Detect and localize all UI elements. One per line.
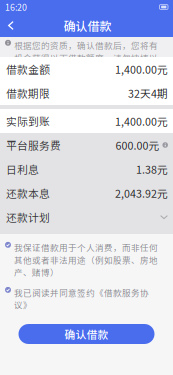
staticText: 平台服务费 bbox=[6, 137, 61, 153]
button[interactable]: 我保证借款用于个人消费，而非任何其他或者非法用途（例如股票、房地产、赌博） bbox=[0, 241, 173, 278]
staticText: 确认借款 bbox=[63, 17, 111, 34]
staticText: 1,400.00元 bbox=[115, 113, 168, 129]
button[interactable]: 确认借款 bbox=[18, 324, 154, 344]
staticText: 1.38元 bbox=[136, 161, 168, 177]
staticText: 实际到账 bbox=[6, 113, 50, 129]
staticText: 借款金额 bbox=[6, 61, 50, 77]
staticText: 1,400.00元 bbox=[115, 61, 168, 77]
staticText: 我保证借款用于个人消费，而非任何其他或者非法用途（例如股票、房地产、赌博） bbox=[14, 241, 158, 278]
button[interactable]: 我已阅读并同意签约《借款服务协议》 bbox=[0, 286, 173, 311]
staticText: 2,043.92元 bbox=[115, 185, 168, 201]
button[interactable]: 还款计划 bbox=[0, 205, 173, 229]
staticText: 32天4期 bbox=[128, 85, 168, 101]
staticText: 还款计划 bbox=[6, 209, 50, 225]
staticText: 16:20 bbox=[5, 1, 27, 13]
button[interactable]: 返回 bbox=[2, 14, 20, 37]
staticText: 借款期限 bbox=[6, 85, 50, 101]
staticText: 还款本息 bbox=[6, 185, 50, 201]
staticText: 日利息 bbox=[6, 161, 39, 177]
staticText: 600.00元 bbox=[115, 137, 159, 153]
staticText: 确认借款 bbox=[64, 326, 108, 342]
staticText: 我已阅读并同意签约《借款服务协议》 bbox=[14, 286, 149, 311]
staticText: 根据您的资质，确认借款后，您将有机会获得以下借款额度，请勿快填以免影响审核及放款… bbox=[14, 39, 158, 77]
